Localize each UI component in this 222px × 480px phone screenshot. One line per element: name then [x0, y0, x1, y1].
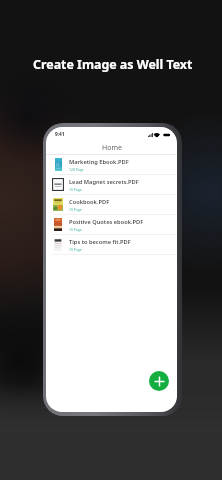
staticText: 120 Page [69, 167, 84, 172]
staticText: Home [102, 143, 122, 153]
staticText: Cookbook.PDF [69, 198, 110, 206]
staticText: Tips to become fit.PDF [69, 238, 131, 246]
staticText: Lead Magnet secrets.PDF [69, 178, 139, 186]
staticText: 10 Page [69, 247, 82, 252]
button[interactable]: Cookbook.PDF [46, 195, 177, 214]
staticText: Create Image as Well Text [33, 56, 193, 73]
button[interactable]: Marketing Ebook.PDF [46, 155, 177, 174]
button[interactable]: Lead Magnet secrets.PDF [46, 175, 177, 194]
staticText: Marketing Ebook.PDF [69, 158, 129, 166]
staticText: 10 Page [69, 207, 82, 212]
staticText: 10 Page [69, 187, 82, 192]
staticText: 9:41 [55, 131, 65, 138]
button[interactable]: Tips to become fit.PDF [46, 235, 177, 254]
button[interactable]: Positive Quotes ebook.PDF [46, 215, 177, 234]
button[interactable]: Add [149, 371, 169, 391]
staticText: 10 Page [69, 227, 82, 232]
staticText: Positive Quotes ebook.PDF [69, 218, 144, 226]
